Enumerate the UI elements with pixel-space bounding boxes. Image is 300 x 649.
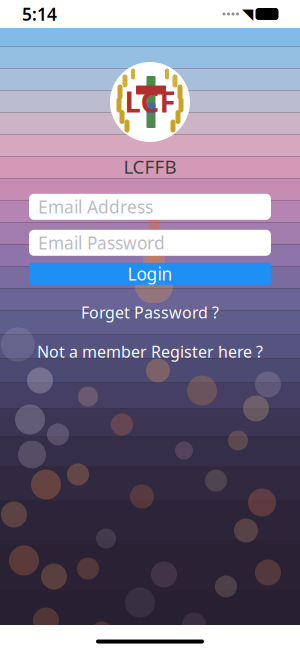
- button[interactable]: Email Address: [29, 194, 271, 220]
- staticText: LCFFB: [123, 154, 176, 179]
- staticText: Not a member Register here ?: [37, 341, 263, 362]
- staticText: LCF: [124, 81, 175, 120]
- button[interactable]: Forget Password ?: [67, 297, 233, 328]
- staticText: Forget Password ?: [81, 302, 219, 323]
- staticText: 5:14: [22, 2, 57, 25]
- staticText: Email Password: [38, 231, 165, 254]
- button[interactable]: Not a member Register here ?: [23, 336, 277, 367]
- button[interactable]: Login: [29, 263, 271, 285]
- staticText: Login: [127, 262, 172, 285]
- button[interactable]: Email Password: [29, 230, 271, 256]
- staticText: Email Address: [38, 195, 153, 218]
- staticText: ◥: [242, 6, 253, 22]
